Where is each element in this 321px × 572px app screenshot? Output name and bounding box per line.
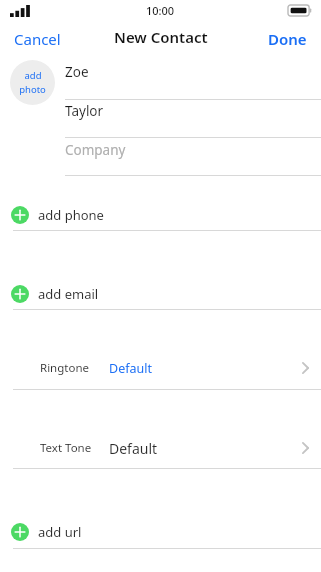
button[interactable]: add url [0, 523, 321, 541]
staticText: Zoe [65, 63, 89, 81]
staticText: photo [19, 83, 46, 96]
staticText: Ringtone [40, 360, 90, 376]
staticText: Text Tone [40, 440, 92, 456]
button[interactable]: add photo [10, 60, 55, 105]
button[interactable]: Taylor [65, 97, 321, 125]
staticText: add phone [38, 206, 104, 224]
staticText: Company [65, 141, 126, 159]
button[interactable]: add email [0, 285, 321, 303]
button[interactable]: Zoe [65, 58, 321, 86]
button[interactable]: add phone [0, 206, 321, 224]
staticText: Default [109, 360, 152, 377]
staticText: New Contact [114, 27, 208, 47]
staticText: Done [268, 29, 307, 45]
button[interactable]: Done [262, 26, 313, 48]
staticText: Taylor [65, 102, 104, 120]
button[interactable]: Cancel [8, 26, 67, 48]
staticText: add email [38, 285, 99, 303]
button[interactable]: Ringtone [0, 356, 321, 380]
staticText: Default [109, 439, 158, 458]
staticText: add url [38, 523, 82, 541]
staticText: 10:00 [146, 3, 175, 18]
button[interactable]: Text Tone [0, 436, 321, 460]
staticText: add [24, 69, 42, 82]
button[interactable]: Company [65, 136, 321, 164]
staticText: Cancel [14, 29, 61, 45]
